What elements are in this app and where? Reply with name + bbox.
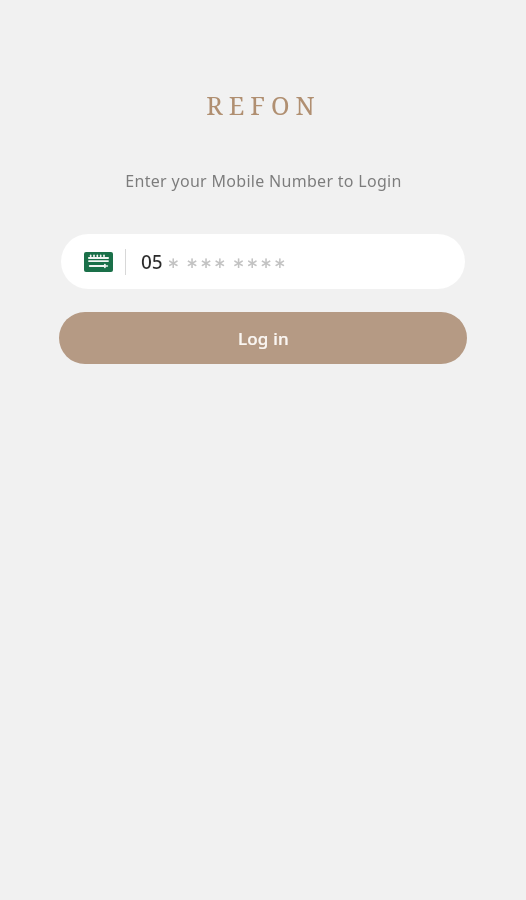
staticText: ∗ ∗∗∗ ∗∗∗∗ bbox=[167, 252, 288, 272]
staticText: REFON bbox=[206, 88, 321, 122]
button[interactable]: Log in bbox=[59, 312, 467, 364]
staticText: Enter your Mobile Number to Login bbox=[125, 170, 402, 192]
button[interactable]: Saudi Arabia country code bbox=[61, 234, 465, 289]
staticText: Log in bbox=[238, 327, 289, 350]
other: Saudi Arabia country code bbox=[84, 252, 113, 272]
staticText: 05 bbox=[141, 249, 163, 275]
